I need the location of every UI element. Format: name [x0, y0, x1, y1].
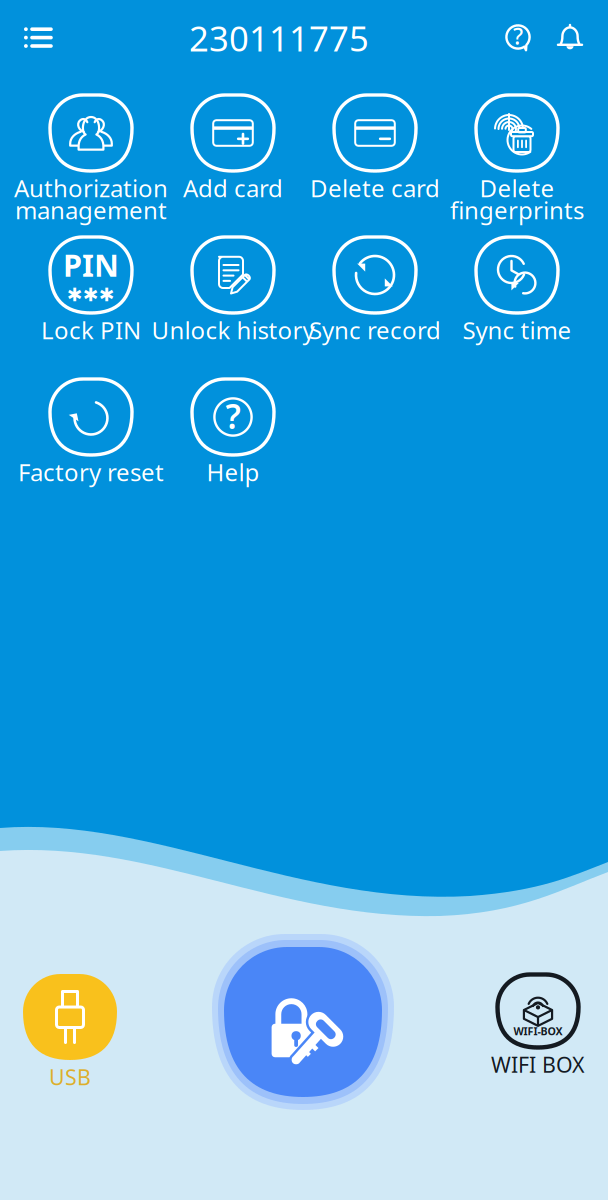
staticText: Unlock history	[151, 314, 314, 346]
button[interactable]: ?	[140, 379, 326, 521]
button[interactable]: Delete card	[282, 95, 468, 237]
staticText: WIFI-BOX	[513, 1024, 562, 1038]
staticText: Factory reset	[18, 456, 164, 488]
staticText: ?	[225, 394, 240, 438]
staticText: ✱✱✱	[67, 284, 115, 305]
button[interactable]: Delete	[424, 95, 608, 237]
button[interactable]: Menu	[12, 9, 64, 67]
staticText: USB	[49, 1063, 91, 1091]
staticText: PIN	[63, 244, 119, 285]
staticText: Authorization	[14, 172, 168, 204]
staticText: management	[15, 194, 167, 226]
button[interactable]: Add card	[140, 95, 326, 237]
staticText: Lock PIN	[41, 314, 141, 346]
button[interactable]: Authorization	[0, 95, 184, 237]
button[interactable]: WIFI-BOX	[448, 965, 608, 1085]
staticText: Add card	[183, 172, 283, 204]
staticText: fingerprints	[450, 194, 584, 226]
staticText: WIFI BOX	[491, 1050, 585, 1079]
staticText: Sync record	[309, 314, 441, 346]
staticText: Delete card	[310, 172, 440, 204]
button[interactable]: PIN	[0, 237, 184, 379]
button[interactable]: Sync time	[424, 237, 608, 379]
staticText: 230111775	[189, 15, 369, 61]
button[interactable]: USB	[0, 971, 145, 1091]
button[interactable]: Lock	[212, 934, 394, 1110]
button[interactable]: Notifications	[544, 9, 596, 67]
staticText: ?	[513, 21, 523, 51]
staticText: Delete	[479, 172, 554, 204]
button[interactable]: Help	[494, 9, 544, 67]
button[interactable]: Unlock history	[140, 237, 326, 379]
button[interactable]: Sync record	[282, 237, 468, 379]
staticText: Sync time	[462, 314, 571, 346]
button[interactable]: Factory reset	[0, 379, 184, 521]
staticText: Help	[206, 456, 259, 488]
